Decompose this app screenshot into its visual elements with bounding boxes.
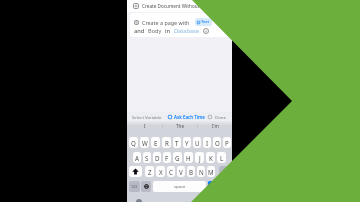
- button[interactable]: F: [163, 152, 171, 163]
- button[interactable]: H: [184, 152, 193, 163]
- button[interactable]: A: [133, 152, 141, 163]
- staticText: P: [225, 139, 229, 147]
- staticText: 123: [131, 184, 138, 189]
- button[interactable]: G: [173, 152, 182, 163]
- button[interactable]: S: [143, 152, 151, 163]
- button[interactable]: space: [153, 181, 206, 192]
- button[interactable]: Z: [145, 166, 154, 177]
- button[interactable]: J: [195, 152, 204, 163]
- staticText: A: [135, 154, 139, 162]
- staticText: W: [142, 139, 148, 147]
- button[interactable]: Ask Each Time: [168, 114, 205, 120]
- staticText: E: [154, 139, 158, 147]
- staticText: F: [165, 154, 169, 162]
- staticText: Q: [131, 139, 136, 147]
- button[interactable]: B: [187, 166, 195, 177]
- staticText: U: [195, 139, 200, 147]
- staticText: Database: [174, 27, 199, 35]
- button[interactable]: Shift: [129, 166, 142, 177]
- staticText: O: [215, 139, 220, 147]
- button[interactable]: I: [127, 121, 162, 131]
- staticText: I'm: [212, 123, 219, 129]
- button[interactable]: Toggle: [208, 115, 212, 119]
- staticText: Z: [148, 168, 152, 176]
- button[interactable]: Return: [208, 181, 220, 192]
- staticText: and: [134, 27, 145, 35]
- staticText: L: [220, 154, 224, 162]
- staticText: Create a page with: [142, 19, 190, 26]
- button[interactable]: R: [162, 137, 171, 148]
- button[interactable]: T: [173, 137, 181, 148]
- button[interactable]: I: [203, 137, 211, 148]
- button[interactable]: Text: [197, 19, 210, 25]
- staticText: I: [206, 139, 209, 147]
- staticText: in: [165, 27, 171, 35]
- staticText: I: [144, 123, 146, 129]
- staticText: Select Variable: [132, 114, 162, 120]
- button[interactable]: M: [207, 166, 215, 177]
- button[interactable]: I'm: [198, 121, 232, 131]
- staticText: J: [199, 154, 201, 162]
- button[interactable]: X: [156, 166, 165, 177]
- staticText: N: [199, 168, 204, 176]
- button[interactable]: W: [140, 137, 149, 148]
- staticText: space: [174, 184, 186, 190]
- button[interactable]: Dictation: [136, 199, 142, 202]
- staticText: S: [145, 154, 149, 162]
- button[interactable]: K: [206, 152, 215, 163]
- button[interactable]: N: [197, 166, 205, 177]
- button[interactable]: Create a page with: [130, 13, 229, 37]
- staticText: Create Document Without Co: [142, 3, 207, 9]
- staticText: Y: [185, 139, 189, 147]
- staticText: D: [155, 154, 160, 162]
- button[interactable]: O: [213, 137, 221, 148]
- staticText: X: [159, 168, 163, 176]
- staticText: H: [186, 154, 191, 162]
- staticText: Text: [201, 19, 210, 25]
- staticText: K: [209, 154, 213, 162]
- staticText: B: [189, 168, 194, 176]
- button[interactable]: C: [167, 166, 175, 177]
- button[interactable]: Y: [183, 137, 191, 148]
- staticText: G: [175, 154, 180, 162]
- staticText: M: [208, 168, 214, 176]
- staticText: Body: [148, 27, 162, 35]
- button[interactable]: The: [163, 121, 197, 131]
- staticText: V: [179, 168, 183, 176]
- button[interactable]: Delete: [219, 166, 231, 177]
- button[interactable]: Q: [129, 137, 138, 148]
- button[interactable]: 123: [129, 181, 140, 192]
- button[interactable]: D: [153, 152, 161, 163]
- button[interactable]: P: [223, 137, 231, 148]
- button[interactable]: V: [177, 166, 185, 177]
- staticText: C: [169, 168, 173, 176]
- staticText: Ask Each Time: [174, 114, 205, 120]
- staticText: The: [176, 123, 184, 129]
- staticText: R: [165, 139, 169, 147]
- button[interactable]: Create Document Without Co: [133, 3, 207, 9]
- button[interactable]: Done: [215, 114, 226, 120]
- button[interactable]: Emoji: [141, 181, 151, 192]
- button[interactable]: L: [217, 152, 226, 163]
- staticText: T: [175, 139, 179, 147]
- button[interactable]: U: [193, 137, 201, 148]
- button[interactable]: E: [151, 137, 160, 148]
